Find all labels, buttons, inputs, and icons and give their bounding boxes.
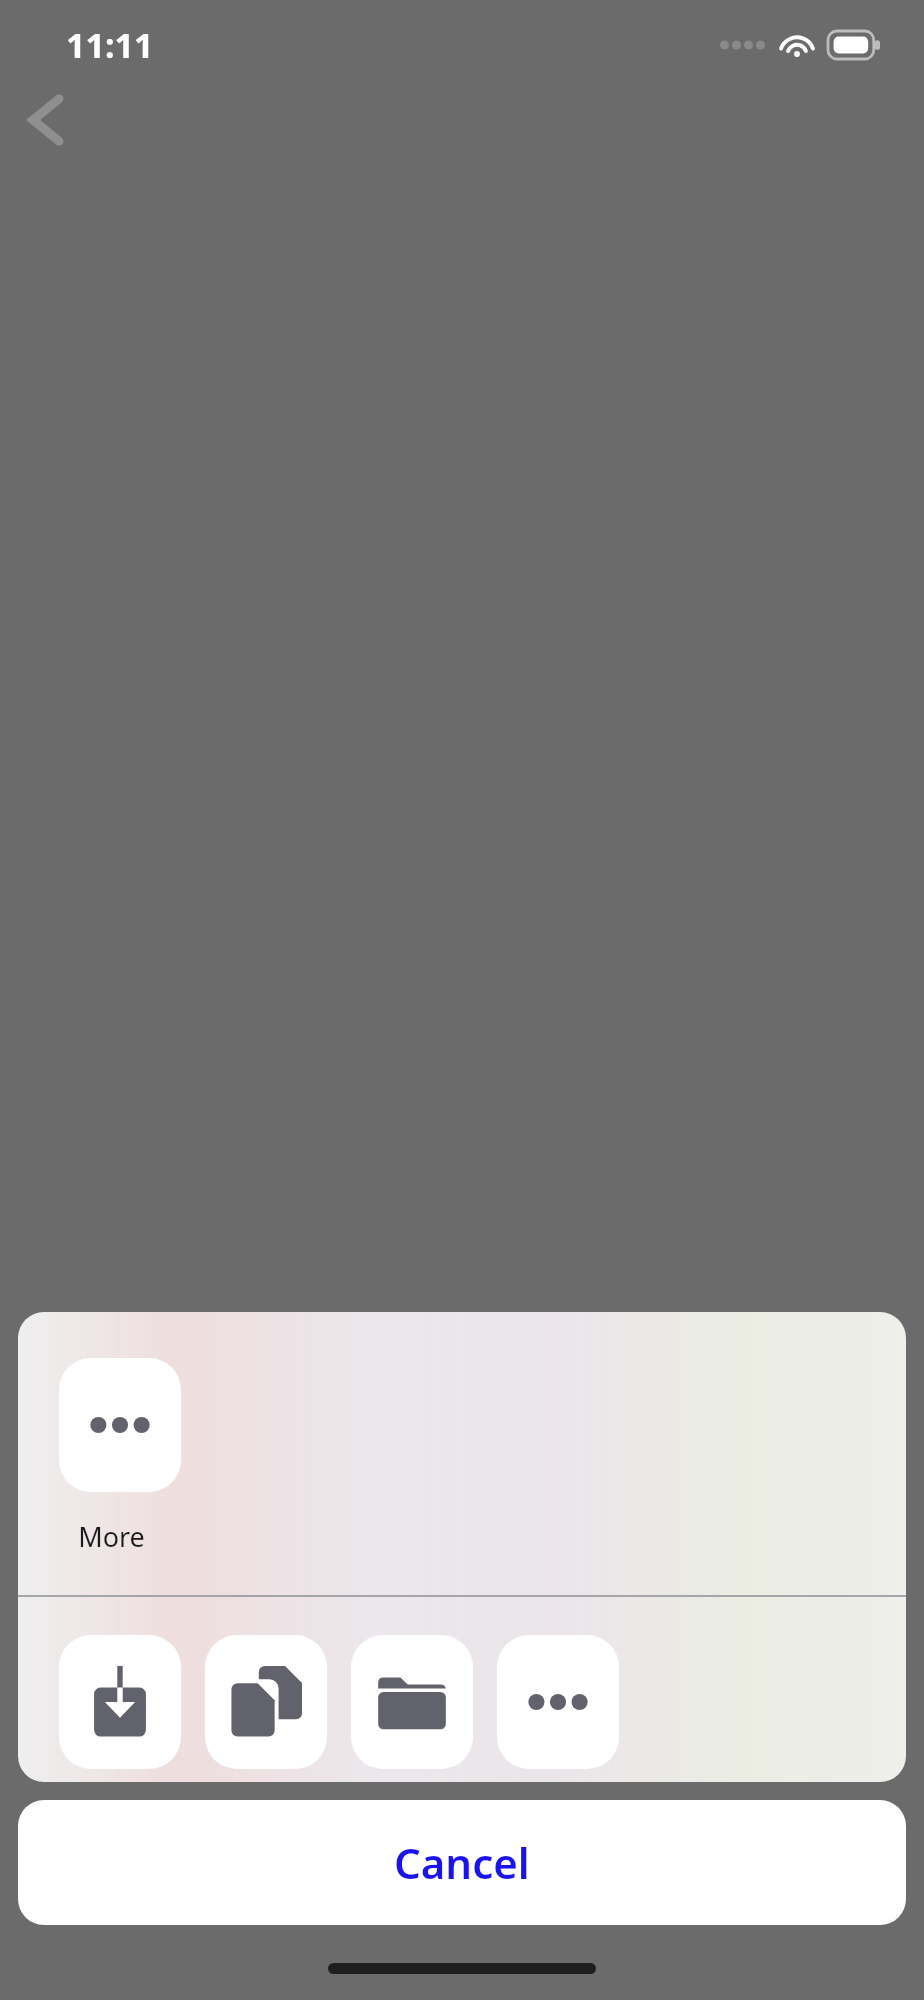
button[interactable]: Save to Files — [333, 1635, 473, 1782]
button[interactable]: More — [479, 1635, 619, 1782]
staticText: More — [78, 1518, 145, 1555]
button[interactable]: More — [41, 1358, 181, 1555]
button[interactable]: Copy — [187, 1635, 327, 1782]
button[interactable]: Back — [8, 82, 84, 158]
staticText: 11:11 — [66, 22, 154, 68]
staticText: Cancel — [394, 1834, 530, 1891]
button[interactable]: Save Image — [41, 1635, 181, 1782]
button[interactable]: Cancel — [18, 1800, 906, 1925]
